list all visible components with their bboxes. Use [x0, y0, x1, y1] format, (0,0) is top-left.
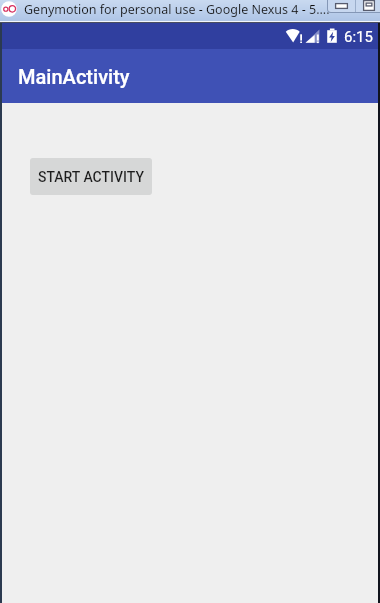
- button[interactable]: Minimize: [328, 0, 355, 12]
- staticText: Genymotion for personal use - Google Nex…: [24, 1, 330, 18]
- staticText: 6:15: [344, 28, 373, 46]
- other: Status icons: [2, 23, 378, 49]
- staticText: MainActivity: [18, 65, 130, 88]
- staticText: START ACTIVITY: [38, 169, 144, 185]
- button[interactable]: START ACTIVITY: [30, 158, 152, 195]
- button[interactable]: Maximize: [356, 0, 380, 12]
